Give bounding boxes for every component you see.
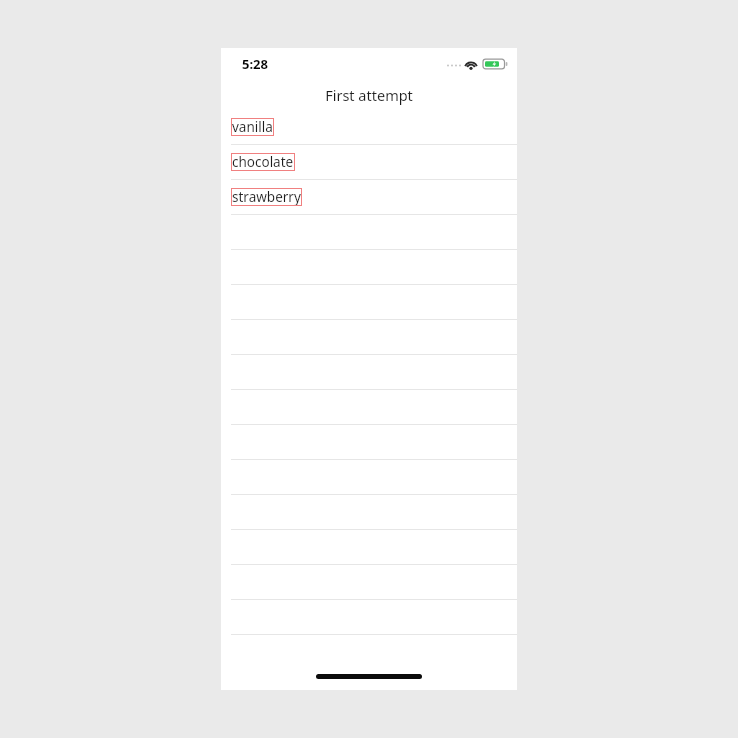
button[interactable] bbox=[221, 320, 517, 355]
staticText: chocolate bbox=[232, 153, 294, 171]
button[interactable] bbox=[221, 355, 517, 390]
staticText: 5:28 bbox=[242, 55, 268, 73]
staticText: First attempt bbox=[325, 85, 413, 105]
button[interactable] bbox=[221, 250, 517, 285]
button[interactable]: strawberry bbox=[221, 180, 517, 215]
staticText: strawberry bbox=[232, 188, 301, 206]
button[interactable] bbox=[221, 495, 517, 530]
button[interactable] bbox=[221, 425, 517, 460]
button[interactable] bbox=[221, 390, 517, 425]
button[interactable] bbox=[221, 285, 517, 320]
button[interactable]: chocolate bbox=[221, 145, 517, 180]
button[interactable] bbox=[221, 565, 517, 600]
staticText: vanilla bbox=[232, 118, 273, 136]
button[interactable] bbox=[221, 460, 517, 495]
button[interactable]: vanilla bbox=[221, 110, 517, 145]
button[interactable] bbox=[221, 530, 517, 565]
button[interactable] bbox=[221, 215, 517, 250]
button[interactable] bbox=[221, 600, 517, 635]
